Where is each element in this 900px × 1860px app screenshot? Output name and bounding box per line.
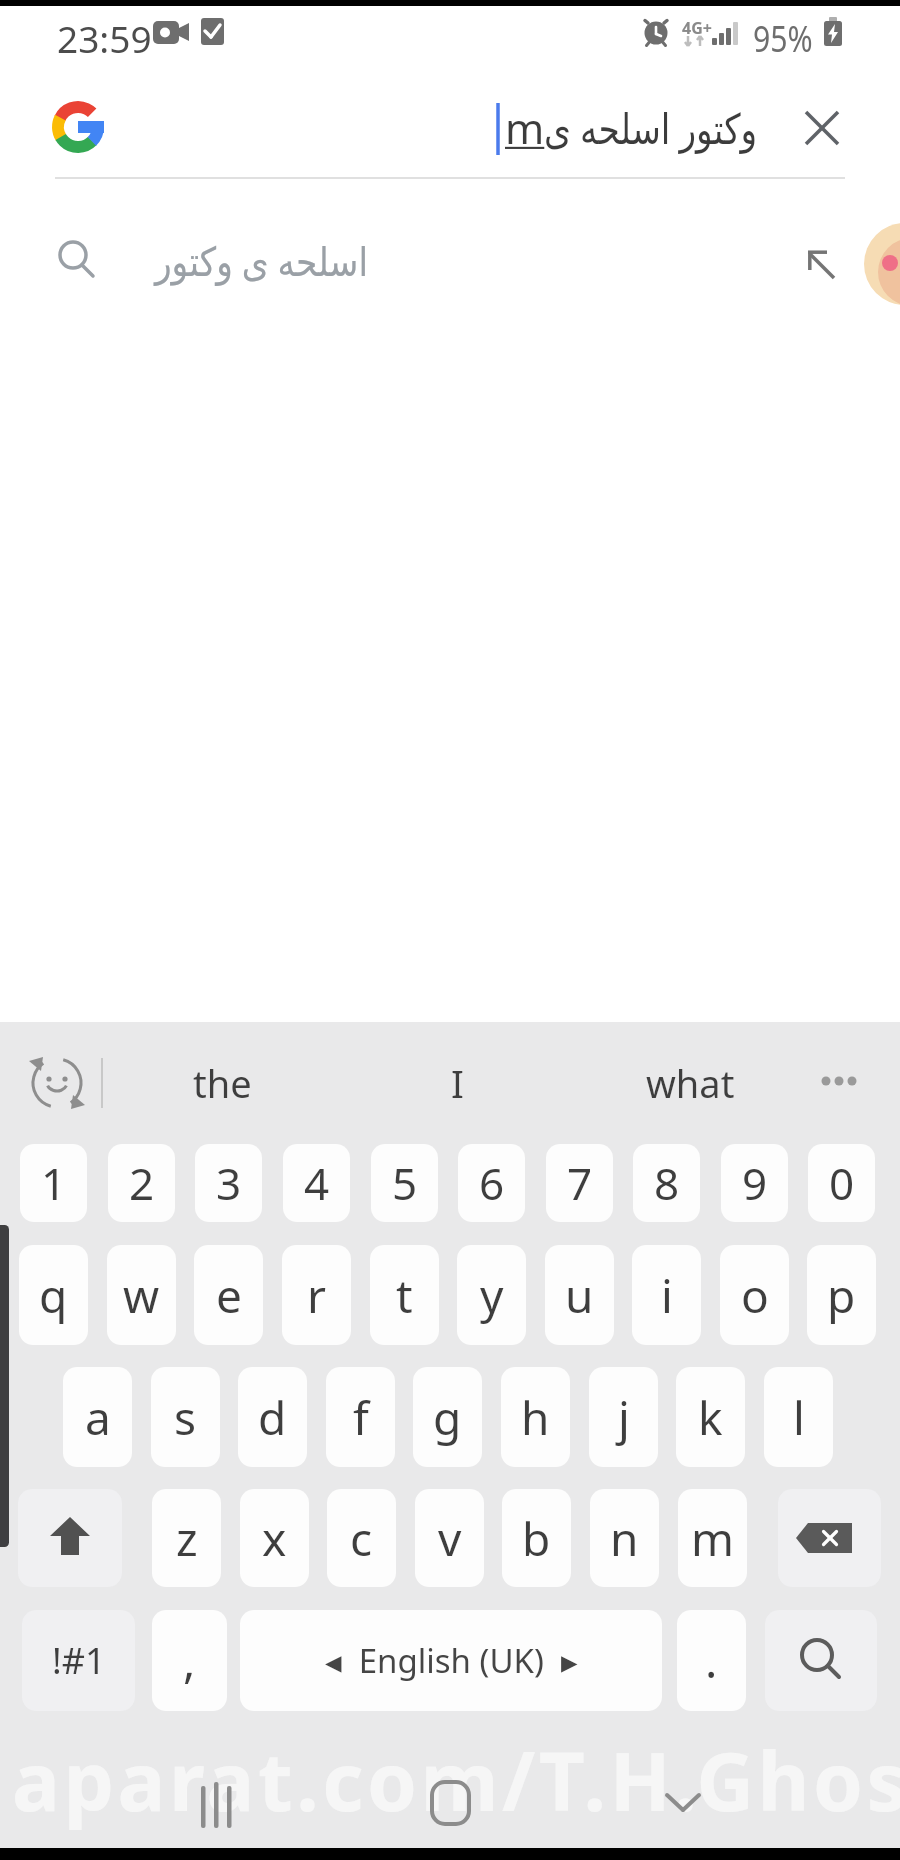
button[interactable] xyxy=(18,1489,122,1587)
staticText: 3 xyxy=(216,1153,242,1213)
staticText: 5 xyxy=(392,1153,418,1213)
staticText: 95% xyxy=(753,14,813,63)
staticText: 2 xyxy=(129,1153,155,1213)
staticText: the xyxy=(193,1057,252,1109)
button[interactable] xyxy=(400,1765,500,1855)
button[interactable]: !#1 xyxy=(22,1610,135,1711)
staticText: I xyxy=(451,1057,464,1109)
button[interactable] xyxy=(778,1489,881,1587)
button[interactable]: c xyxy=(327,1489,396,1587)
button[interactable]: a xyxy=(63,1367,132,1467)
button[interactable] xyxy=(160,1765,270,1855)
staticText: m xyxy=(691,1507,735,1570)
button[interactable]: v xyxy=(415,1489,484,1587)
staticText: what xyxy=(646,1057,735,1109)
staticText: 0 xyxy=(829,1153,855,1213)
button[interactable] xyxy=(630,1765,740,1855)
staticText: p xyxy=(827,1264,856,1327)
button[interactable]: t xyxy=(370,1245,439,1345)
button[interactable]: o xyxy=(720,1245,789,1345)
button[interactable]: w xyxy=(107,1245,176,1345)
button[interactable] xyxy=(14,1040,100,1126)
staticText: t xyxy=(396,1264,413,1327)
button[interactable]: y xyxy=(457,1245,526,1345)
button[interactable]: 5 xyxy=(371,1144,438,1222)
staticText: . xyxy=(705,1629,718,1692)
staticText: y xyxy=(480,1264,504,1327)
staticText: v xyxy=(438,1507,462,1570)
staticText: h xyxy=(521,1386,550,1449)
button[interactable]: x xyxy=(240,1489,309,1587)
staticText: j xyxy=(618,1386,630,1449)
button[interactable]: b xyxy=(502,1489,571,1587)
staticText: f xyxy=(353,1386,369,1449)
staticText: ◂ English (UK) ▸ xyxy=(325,1638,578,1683)
button[interactable]: 1 xyxy=(20,1144,87,1222)
staticText: اسلحه ی وکتور xyxy=(155,233,368,287)
button[interactable]: n xyxy=(590,1489,659,1587)
staticText: 8 xyxy=(654,1153,680,1213)
staticText: g xyxy=(433,1386,462,1449)
button[interactable]: 8 xyxy=(633,1144,700,1222)
staticText: 4G+ xyxy=(682,17,712,39)
staticText: 4 xyxy=(304,1153,330,1213)
button[interactable]: 3 xyxy=(195,1144,262,1222)
button[interactable]: اسلحه ی وکتور xyxy=(0,215,860,315)
staticText: o xyxy=(741,1264,769,1327)
button[interactable]: e xyxy=(194,1245,263,1345)
button[interactable]: q xyxy=(19,1245,88,1345)
button[interactable]: 4 xyxy=(283,1144,350,1222)
button[interactable]: 7 xyxy=(546,1144,613,1222)
staticText: d xyxy=(258,1386,287,1449)
button[interactable]: ◂ English (UK) ▸ xyxy=(240,1610,662,1711)
button[interactable]: . xyxy=(677,1610,746,1711)
staticText: z xyxy=(176,1507,198,1570)
staticText: وکتور اسلحه ی xyxy=(544,99,758,156)
staticText: a xyxy=(85,1386,111,1449)
button[interactable]: 6 xyxy=(458,1144,525,1222)
button[interactable]: l xyxy=(764,1367,833,1467)
staticText: u xyxy=(565,1264,594,1327)
staticText: s xyxy=(174,1386,197,1449)
button[interactable]: 2 xyxy=(108,1144,175,1222)
button[interactable]: j xyxy=(589,1367,658,1467)
staticText: 1 xyxy=(41,1153,67,1213)
button[interactable]: 0 xyxy=(808,1144,875,1222)
staticText: 9 xyxy=(742,1153,768,1213)
staticText: m xyxy=(505,99,545,156)
button[interactable]: m xyxy=(678,1489,747,1587)
button[interactable]: u xyxy=(545,1245,614,1345)
staticText: aparat.com/T.H.Ghos xyxy=(12,1725,900,1834)
staticText: 6 xyxy=(479,1153,505,1213)
staticText: x xyxy=(262,1507,287,1570)
staticText: e xyxy=(216,1264,242,1327)
button[interactable]: f xyxy=(326,1367,395,1467)
button[interactable]: I xyxy=(351,1040,563,1126)
button[interactable]: z xyxy=(152,1489,221,1587)
staticText: r xyxy=(307,1264,326,1327)
button[interactable] xyxy=(790,96,854,160)
staticText: i xyxy=(661,1264,673,1327)
button[interactable] xyxy=(765,1610,877,1711)
button[interactable]: , xyxy=(152,1610,227,1711)
button[interactable]: k xyxy=(676,1367,745,1467)
staticText: k xyxy=(698,1386,723,1449)
button[interactable]: the xyxy=(116,1040,328,1126)
staticText: n xyxy=(610,1507,639,1570)
button[interactable]: 9 xyxy=(721,1144,788,1222)
button[interactable]: what xyxy=(584,1040,796,1126)
staticText: w xyxy=(123,1264,160,1327)
button[interactable]: i xyxy=(632,1245,701,1345)
staticText: 23:59 xyxy=(57,13,152,63)
staticText: c xyxy=(350,1507,373,1570)
staticText: b xyxy=(522,1507,551,1570)
staticText: , xyxy=(183,1629,196,1692)
button[interactable]: h xyxy=(501,1367,570,1467)
button[interactable]: s xyxy=(151,1367,220,1467)
button[interactable]: g xyxy=(413,1367,482,1467)
staticText: q xyxy=(39,1264,68,1327)
button[interactable]: d xyxy=(238,1367,307,1467)
staticText: 7 xyxy=(567,1153,593,1213)
button[interactable]: p xyxy=(807,1245,876,1345)
button[interactable]: r xyxy=(282,1245,351,1345)
